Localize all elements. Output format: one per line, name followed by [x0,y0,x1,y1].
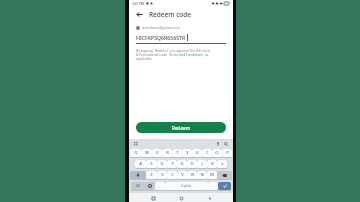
staticText: Z [150,172,153,178]
button[interactable]: W [141,149,152,157]
staticText: E [156,150,159,156]
staticText: Y [186,150,189,156]
button[interactable]: X [157,171,167,179]
staticText: English [181,184,192,188]
button[interactable]: H [187,160,197,168]
button[interactable]: Recents [149,194,157,202]
staticText: H [190,161,194,167]
button[interactable]: Redeem [136,122,226,133]
button[interactable]: Enter [218,182,231,190]
button[interactable]: Keyboard modes [133,141,139,147]
staticText: B [191,172,194,178]
button[interactable]: T [172,149,182,157]
button[interactable]: D [157,160,167,168]
staticText: O [215,150,219,156]
staticText: S [150,161,153,167]
staticText: G [180,161,184,167]
staticText: R [166,150,169,156]
staticText: J [201,161,203,167]
button[interactable]: V [177,171,187,179]
staticText: , [159,183,161,189]
staticText: F8CFKPSQ6R6S6STR [136,34,186,41]
staticText: W [145,150,149,156]
staticText: Q [134,150,138,156]
button[interactable]: Y [182,149,192,157]
button[interactable]: U [192,149,202,157]
staticText: Redeem [172,125,191,131]
button[interactable]: L [217,160,227,168]
staticText: K [211,161,214,167]
button[interactable]: Back [205,194,213,202]
staticText: C [171,172,174,178]
staticText: applicable. [136,56,153,60]
button[interactable]: R [162,149,172,157]
staticText: D [160,161,164,167]
button[interactable]: Settings [145,182,155,190]
button[interactable]: A [135,160,146,168]
button[interactable]: . [208,182,218,190]
staticText: 3:41 PM [132,2,145,6]
staticText: !#1 [136,184,141,188]
staticText: , as [203,52,209,56]
staticText: . [212,183,214,189]
staticText: userfoous@gmail.com [142,25,180,30]
staticText: A [139,161,142,167]
button[interactable]: I [202,149,212,157]
button[interactable]: Home [177,194,185,202]
staticText: By tapping "Redeem" you agree to the Gif… [136,48,210,52]
staticText: N [200,172,204,178]
button[interactable]: F [167,160,177,168]
button[interactable]: E [152,149,162,157]
staticText: U [195,150,199,156]
staticText: V [181,172,184,178]
button[interactable]: P [222,149,232,157]
staticText: Redeem code [149,10,192,19]
button[interactable]: M [207,171,217,179]
button[interactable]: J [197,160,207,168]
button[interactable]: B [187,171,197,179]
button[interactable]: N [197,171,207,179]
button[interactable]: Back [133,8,145,20]
button[interactable]: , [155,182,165,190]
button[interactable]: Q [130,149,141,157]
button[interactable]: G [177,160,187,168]
button[interactable]: Shift [130,171,146,179]
button[interactable]: Backspace [217,171,232,179]
button[interactable]: O [212,149,222,157]
staticText: T [176,150,179,156]
staticText: I [206,150,208,156]
button[interactable]: S [146,160,157,168]
staticText: F [171,161,174,167]
staticText: P [226,150,229,156]
button[interactable]: Search [223,141,229,147]
staticText: L [221,161,224,167]
button[interactable]: C [167,171,177,179]
button[interactable]: F8CFKPSQ6R6S6STR [136,34,226,44]
button[interactable]: K [207,160,217,168]
button[interactable]: Z [146,171,157,179]
staticText: X [161,172,164,178]
staticText: & Promotional Code [136,52,169,56]
button[interactable]: Voice input [215,141,221,147]
button[interactable]: Symbols [131,182,145,190]
button[interactable]: Terms and Conditions [169,52,203,56]
staticText: M [210,172,214,178]
button[interactable]: Space [165,182,208,190]
